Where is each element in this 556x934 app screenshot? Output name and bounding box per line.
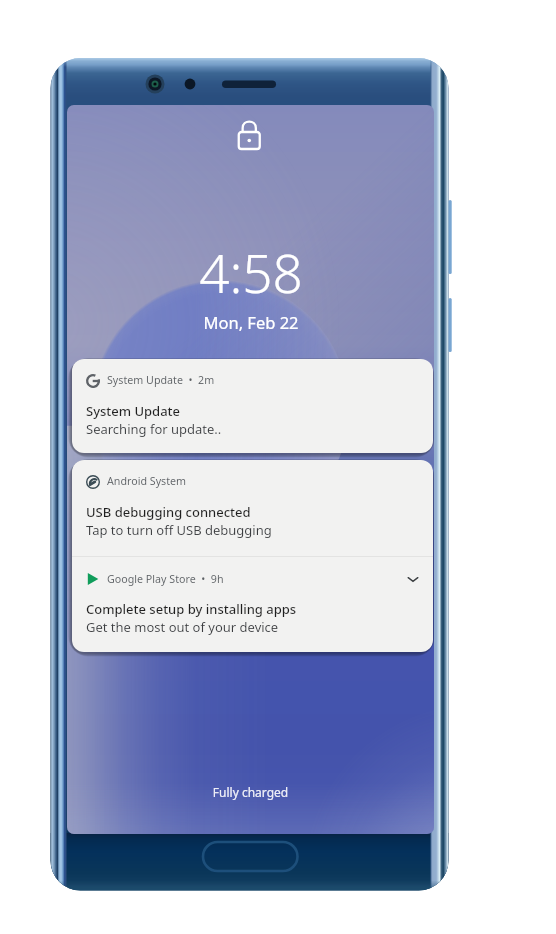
staticText: Mon, Feb 22	[203, 311, 299, 333]
staticText: Tap to turn off USB debugging	[86, 521, 272, 539]
staticText: Google Play Store • 9h	[107, 572, 224, 587]
staticText: Get the most out of your device	[86, 618, 279, 636]
staticText: Android System	[107, 474, 187, 489]
button[interactable]: Google Play Store • 9h	[72, 557, 433, 652]
staticText: USB debugging connected	[86, 503, 251, 521]
button[interactable]: Expand notification	[405, 571, 421, 587]
staticText: Searching for update..	[86, 420, 222, 438]
staticText: System Update • 2m	[107, 373, 215, 388]
staticText: Fully charged	[67, 784, 434, 800]
staticText: 4:58	[199, 236, 303, 308]
staticText: Complete setup by installing apps	[86, 600, 297, 618]
staticText: System Update	[86, 402, 181, 420]
button[interactable]: Android System	[72, 460, 433, 556]
button[interactable]: System Update • 2m	[72, 359, 433, 453]
